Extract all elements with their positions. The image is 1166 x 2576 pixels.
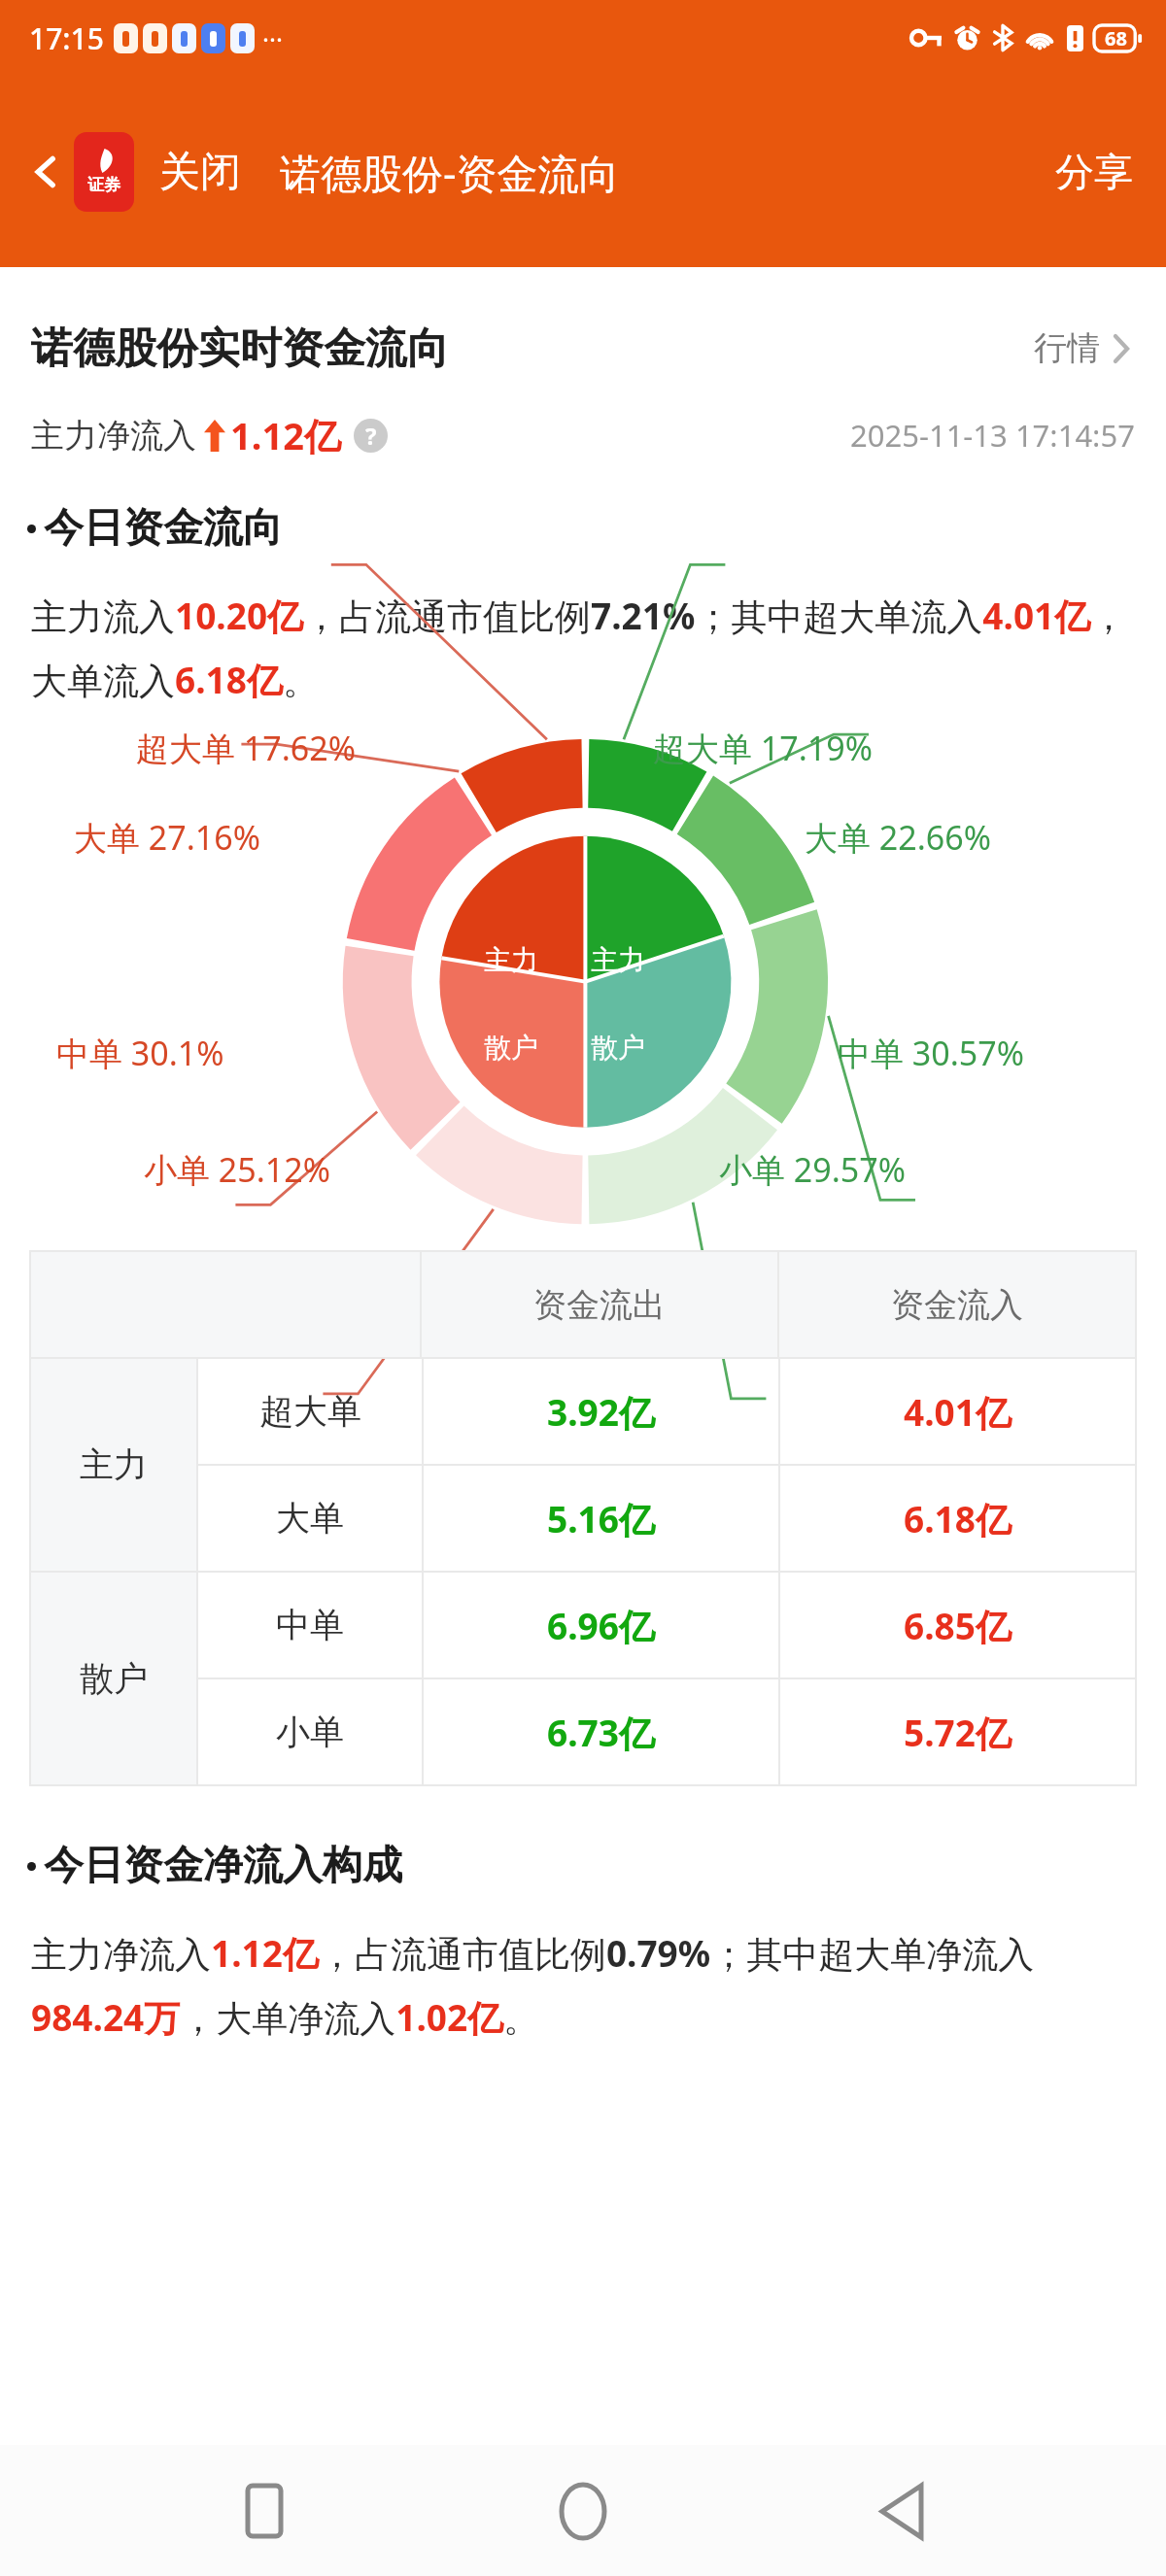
staticText: 资金流入 xyxy=(891,1284,1023,1326)
staticText: 今日资金流向 xyxy=(44,503,283,554)
button[interactable]: 中单 xyxy=(198,1573,1135,1678)
staticText: 散户 xyxy=(80,1657,148,1700)
staticText: 6.73亿 xyxy=(547,1708,655,1757)
staticText: 分享 xyxy=(1055,148,1133,196)
staticText: 超大单 17.62% xyxy=(136,726,356,770)
staticText: 中单 30.1% xyxy=(56,1031,224,1075)
button[interactable]: 大单 xyxy=(198,1466,1135,1571)
staticText: 主力 xyxy=(80,1443,148,1486)
staticText: 主力流入10.20亿，占流通市值比例7.21%；其中超大单流入4.01亿，大单流… xyxy=(31,591,1135,704)
staticText: 散户 xyxy=(591,1031,645,1065)
staticText: 大单 xyxy=(276,1497,344,1540)
button[interactable]: 关闭 xyxy=(154,135,247,210)
button[interactable]: 返回 xyxy=(847,2457,956,2565)
staticText: 6.85亿 xyxy=(904,1601,1012,1650)
button[interactable]: 最近任务 xyxy=(210,2457,319,2565)
button[interactable]: 说明 xyxy=(354,419,388,453)
staticText: 6.96亿 xyxy=(547,1601,655,1650)
staticText: 主力净流入1.12亿，占流通市值比例0.79%；其中超大单净流入984.24万，… xyxy=(31,1928,1135,2042)
button[interactable]: 主页 xyxy=(529,2457,637,2565)
staticText: 证券 xyxy=(87,175,120,195)
staticText: 资金流出 xyxy=(533,1284,666,1326)
staticText: 2025-11-13 17:14:57 xyxy=(850,415,1135,456)
staticText: 4.01亿 xyxy=(904,1387,1012,1437)
staticText: 中单 xyxy=(276,1604,344,1646)
staticText: 6.18亿 xyxy=(904,1494,1012,1543)
staticText: 小单 xyxy=(276,1711,344,1753)
staticText: 关闭 xyxy=(159,147,241,198)
staticText: 5.16亿 xyxy=(547,1494,655,1543)
staticText: 1.12亿 xyxy=(230,410,341,460)
staticText: 诺德股份实时资金流向 xyxy=(31,322,449,375)
staticText: 5.72亿 xyxy=(904,1708,1012,1757)
staticText: 主力净流入 xyxy=(31,415,196,457)
staticText: 超大单 17.19% xyxy=(653,726,873,770)
staticText: 小单 29.57% xyxy=(719,1147,906,1192)
staticText: 行情 xyxy=(1034,327,1100,369)
button[interactable]: 返回 xyxy=(17,144,74,200)
staticText: 大单 22.66% xyxy=(805,815,991,860)
staticText: 超大单 xyxy=(259,1390,361,1433)
button[interactable]: 分享 xyxy=(1044,136,1145,208)
staticText: 散户 xyxy=(484,1031,538,1065)
staticText: ··· xyxy=(262,21,283,55)
staticText: 主力 xyxy=(591,943,645,977)
staticText: 今日资金净流入构成 xyxy=(44,1841,402,1891)
staticText: 大单 27.16% xyxy=(74,815,260,860)
staticText: ? xyxy=(365,420,377,452)
staticText: 中单 30.57% xyxy=(838,1031,1024,1075)
button[interactable]: 超大单 xyxy=(198,1359,1135,1464)
staticText: 17:15 xyxy=(29,18,104,58)
staticText: 小单 25.12% xyxy=(144,1147,330,1192)
staticText: 68 xyxy=(1105,25,1127,51)
button[interactable]: 证券 xyxy=(74,132,134,212)
button[interactable]: 行情 xyxy=(1028,318,1135,379)
staticText: 主力 xyxy=(484,943,538,977)
staticText: 诺德股份-资金流向 xyxy=(280,145,620,200)
button[interactable]: 小单 xyxy=(198,1679,1135,1784)
staticText: 3.92亿 xyxy=(547,1387,655,1437)
